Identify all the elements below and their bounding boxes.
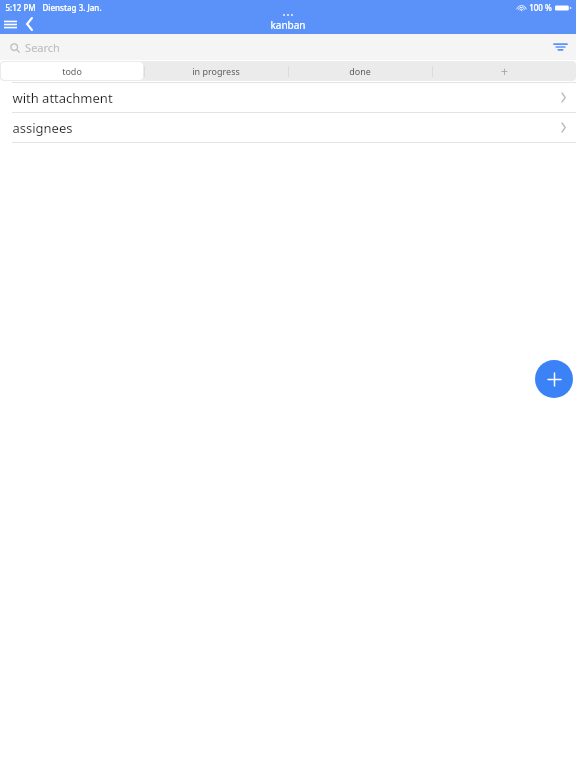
staticText: done	[349, 65, 371, 77]
button[interactable]: +	[432, 61, 576, 81]
button[interactable]: Filter	[544, 34, 576, 60]
button[interactable]: done	[288, 61, 432, 81]
button[interactable]: with attachment	[0, 83, 576, 112]
button[interactable]: Menu	[0, 14, 20, 34]
staticText: todo	[62, 65, 82, 77]
button[interactable]: in progress	[144, 61, 288, 81]
button[interactable]: Back	[20, 14, 38, 34]
staticText: Dienstag 3. Jan.	[42, 2, 102, 13]
button[interactable]: todo	[0, 61, 144, 81]
staticText: Search	[25, 40, 60, 55]
button[interactable]: Add	[535, 360, 573, 398]
staticText: kanban	[270, 18, 306, 32]
staticText: 100 %	[529, 2, 552, 13]
staticText: +	[501, 63, 508, 79]
button[interactable]: assignees	[0, 113, 576, 142]
staticText: assignees	[12, 119, 73, 137]
staticText: in progress	[192, 65, 240, 77]
staticText: 5:12 PM	[5, 2, 36, 13]
button[interactable]: Search	[10, 40, 60, 55]
staticText: with attachment	[12, 89, 113, 107]
